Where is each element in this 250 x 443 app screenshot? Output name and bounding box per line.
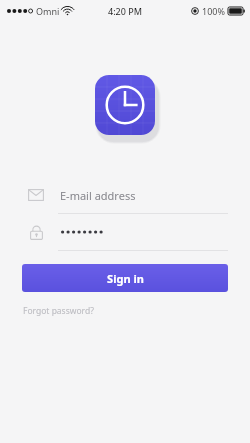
button[interactable]: Clock app logo	[95, 75, 155, 135]
button[interactable]: Password field	[0, 223, 250, 241]
button[interactable]: Sign in	[22, 264, 228, 292]
staticText: Omni	[36, 5, 60, 17]
button[interactable]: Forgot password?	[22, 302, 95, 320]
button[interactable]: E-mail address field	[0, 186, 250, 204]
staticText: 100%	[202, 5, 225, 17]
staticText: Forgot password?	[23, 305, 94, 317]
staticText: 4:20 PM	[108, 5, 142, 17]
staticText: E-mail address	[60, 188, 136, 203]
staticText: Sign in	[107, 271, 144, 286]
